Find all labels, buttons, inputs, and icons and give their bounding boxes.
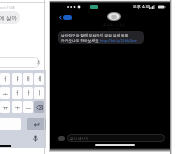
staticText: ㅓ — [14, 89, 21, 97]
staticText: ㅣ — [36, 89, 43, 97]
button[interactable]: ㅓ — [0, 73, 10, 85]
button[interactable]: ㅠ — [0, 101, 10, 113]
staticText: http://bit.ly/2LhkQwe — [100, 38, 137, 43]
button[interactable]: ㅑ — [12, 73, 22, 85]
staticText: 오후 4:33 — [133, 4, 150, 9]
button[interactable]: Enter — [27, 118, 46, 130]
staticText: ㅠ — [2, 103, 9, 111]
staticText: ㅐ — [25, 75, 32, 83]
button[interactable] — [0, 57, 40, 68]
other: Microphone — [32, 135, 39, 142]
button[interactable]: 문자 메시지 — [67, 134, 165, 142]
button[interactable]: 에 살까 — [0, 11, 20, 24]
staticText: ㅗ — [2, 89, 9, 97]
staticText: ㅡ — [25, 103, 32, 111]
other: Backspace — [36, 104, 43, 111]
button[interactable]: ㅗ — [0, 87, 10, 99]
staticText: ㅓ — [2, 75, 9, 83]
button[interactable]: ㅔ — [34, 73, 44, 85]
staticText: ㅔ — [36, 75, 43, 83]
other: Enter — [33, 121, 40, 128]
other: Back — [59, 15, 62, 20]
button[interactable]: ㅣ — [34, 87, 44, 99]
staticText: 카카오나우 찾아보세요 — [61, 38, 100, 43]
button[interactable]: Contact photo — [107, 12, 121, 21]
button[interactable]: Backspace — [34, 101, 44, 113]
staticText: ㅑ — [14, 75, 21, 83]
staticText: ㅜ — [14, 103, 21, 111]
button[interactable]: ㅓ — [12, 87, 22, 99]
button[interactable]: Microphone — [32, 135, 39, 142]
other: Microphone — [36, 60, 41, 65]
staticText: 남자친구와 함께 부천까지 금점 업체 목록 — [61, 33, 129, 38]
button[interactable]: ㅜ — [12, 101, 22, 113]
button[interactable]: Back — [58, 14, 73, 21]
button[interactable]: ㅡ — [23, 101, 33, 113]
button[interactable]: 남자친구와 함께 부천까지 금점 업체 목록 — [58, 31, 144, 44]
staticText: 오전 11:08 — [0, 6, 15, 10]
staticText: ㅏ — [25, 89, 32, 97]
button[interactable]: ㅏ — [23, 87, 33, 99]
button[interactable]: Microphone — [36, 60, 41, 65]
button[interactable]: ㅐ — [23, 73, 33, 85]
button[interactable]: Add attachment — [58, 136, 65, 141]
staticText: 홍길동 고객님 — [103, 22, 125, 27]
staticText: 에 살까 — [0, 14, 17, 22]
staticText: 문자 메시지 — [70, 136, 89, 141]
